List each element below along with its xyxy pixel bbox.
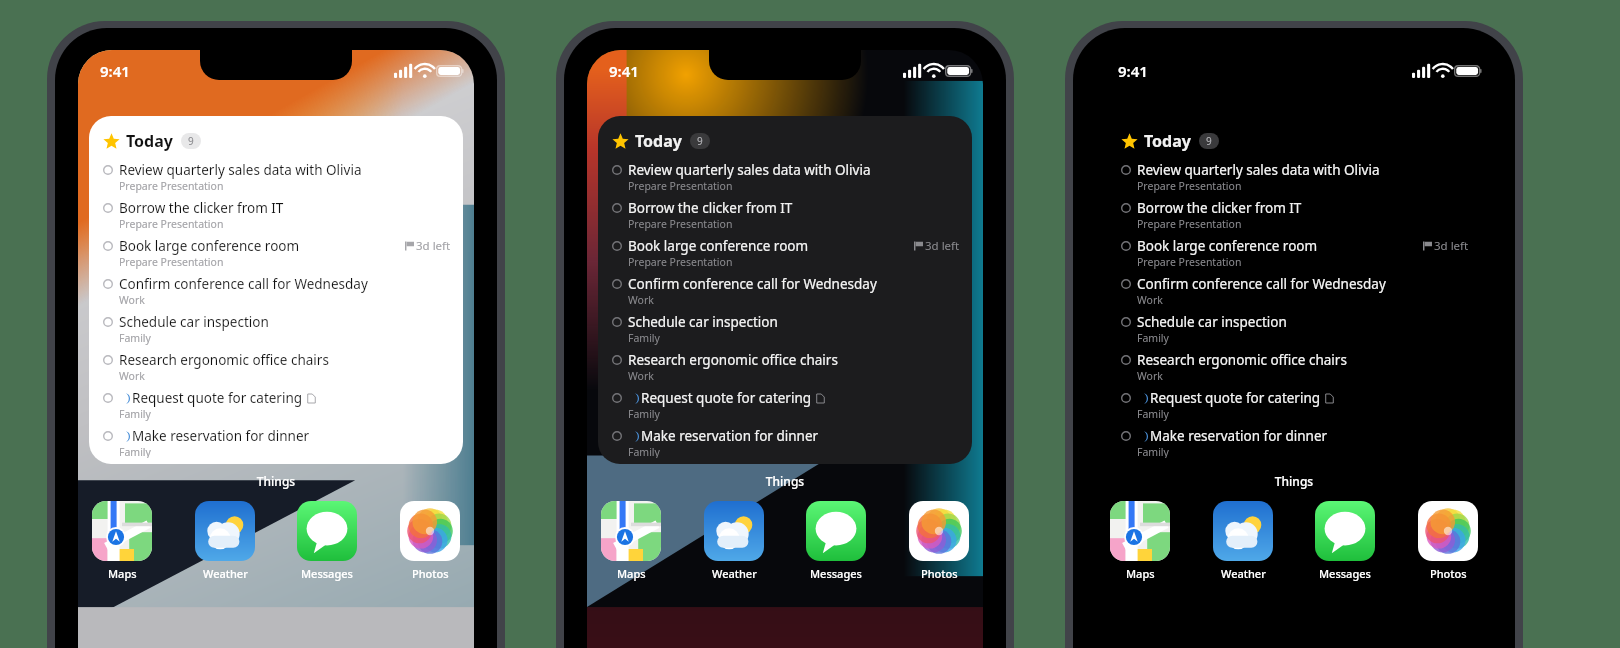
staticText: Weather bbox=[1221, 566, 1266, 581]
button[interactable]: Schedule car inspection bbox=[1121, 313, 1469, 351]
staticText: Confirm conference call for Wednesday bbox=[1137, 275, 1386, 293]
button[interactable]: Request quote for catering bbox=[1121, 389, 1469, 427]
staticText: Borrow the clicker from IT bbox=[119, 199, 284, 217]
staticText: Prepare Presentation bbox=[119, 255, 224, 269]
staticText: Family bbox=[119, 407, 151, 421]
staticText: 3d left bbox=[416, 238, 451, 254]
staticText: Request quote for catering bbox=[1150, 389, 1321, 407]
button[interactable]: Today bbox=[89, 116, 463, 464]
button[interactable]: Messages bbox=[1315, 501, 1375, 581]
button[interactable]: Weather bbox=[1213, 501, 1273, 581]
button[interactable]: Request quote for catering bbox=[103, 389, 451, 427]
button[interactable]: Make reservation for dinner bbox=[612, 427, 960, 464]
staticText: Photos bbox=[921, 566, 958, 581]
staticText: Make reservation for dinner bbox=[1150, 427, 1328, 445]
staticText: Research ergonomic office chairs bbox=[119, 351, 329, 369]
button[interactable]: Photos bbox=[1418, 501, 1478, 581]
button[interactable]: Photos bbox=[909, 501, 969, 581]
staticText: Make reservation for dinner bbox=[132, 427, 310, 445]
staticText: Photos bbox=[1430, 566, 1467, 581]
staticText: Family bbox=[119, 445, 151, 458]
button[interactable]: Schedule car inspection bbox=[612, 313, 960, 351]
staticText: 9:41 bbox=[609, 61, 639, 81]
staticText: 3d left bbox=[1434, 238, 1469, 254]
staticText: Family bbox=[119, 331, 151, 345]
staticText: Request quote for catering bbox=[641, 389, 812, 407]
button[interactable]: Messages bbox=[806, 501, 866, 581]
staticText: Work bbox=[628, 369, 654, 383]
button[interactable]: Review quarterly sales data with Olivia bbox=[612, 161, 960, 199]
button[interactable]: Request quote for catering bbox=[612, 389, 960, 427]
button[interactable]: Weather bbox=[704, 501, 764, 581]
staticText: Things bbox=[587, 473, 983, 489]
staticText: Things bbox=[78, 473, 474, 489]
staticText: Family bbox=[628, 331, 660, 345]
button[interactable]: Make reservation for dinner bbox=[103, 427, 451, 464]
staticText: Work bbox=[628, 293, 654, 307]
staticText: Prepare Presentation bbox=[628, 179, 733, 193]
staticText: Today bbox=[126, 130, 173, 152]
staticText: Family bbox=[1137, 445, 1169, 458]
button[interactable]: Borrow the clicker from IT bbox=[612, 199, 960, 237]
button[interactable]: Research ergonomic office chairs bbox=[612, 351, 960, 389]
staticText: Work bbox=[1137, 369, 1163, 383]
staticText: Work bbox=[119, 369, 145, 383]
button[interactable]: Book large conference room bbox=[103, 237, 451, 275]
button[interactable]: Confirm conference call for Wednesday bbox=[103, 275, 451, 313]
staticText: Research ergonomic office chairs bbox=[628, 351, 838, 369]
button[interactable]: Messages bbox=[297, 501, 357, 581]
staticText: Book large conference room bbox=[119, 237, 300, 255]
staticText: Prepare Presentation bbox=[1137, 255, 1242, 269]
button[interactable]: Today bbox=[1107, 116, 1481, 464]
staticText: Prepare Presentation bbox=[119, 217, 224, 231]
staticText: Prepare Presentation bbox=[628, 255, 733, 269]
staticText: Prepare Presentation bbox=[1137, 179, 1242, 193]
staticText: Schedule car inspection bbox=[628, 313, 778, 331]
button[interactable]: Maps bbox=[1110, 501, 1170, 581]
staticText: Messages bbox=[810, 566, 862, 581]
button[interactable]: Book large conference room bbox=[1121, 237, 1469, 275]
staticText: Request quote for catering bbox=[132, 389, 303, 407]
staticText: Borrow the clicker from IT bbox=[628, 199, 793, 217]
staticText: Weather bbox=[712, 566, 757, 581]
button[interactable]: Photos bbox=[400, 501, 460, 581]
button[interactable]: Review quarterly sales data with Olivia bbox=[103, 161, 451, 199]
staticText: Borrow the clicker from IT bbox=[1137, 199, 1302, 217]
button[interactable]: Research ergonomic office chairs bbox=[103, 351, 451, 389]
staticText: Maps bbox=[617, 566, 646, 581]
staticText: Book large conference room bbox=[1137, 237, 1318, 255]
staticText: 9 bbox=[188, 134, 194, 148]
staticText: Work bbox=[1137, 293, 1163, 307]
button[interactable]: Today bbox=[598, 116, 972, 464]
button[interactable]: Confirm conference call for Wednesday bbox=[612, 275, 960, 313]
button[interactable]: Borrow the clicker from IT bbox=[1121, 199, 1469, 237]
button[interactable]: Review quarterly sales data with Olivia bbox=[1121, 161, 1469, 199]
staticText: Work bbox=[119, 293, 145, 307]
staticText: 9 bbox=[1206, 134, 1212, 148]
staticText: Prepare Presentation bbox=[628, 217, 733, 231]
staticText: Confirm conference call for Wednesday bbox=[119, 275, 368, 293]
button[interactable]: Research ergonomic office chairs bbox=[1121, 351, 1469, 389]
staticText: Review quarterly sales data with Olivia bbox=[1137, 161, 1380, 179]
staticText: Maps bbox=[108, 566, 137, 581]
staticText: Today bbox=[635, 130, 682, 152]
staticText: Make reservation for dinner bbox=[641, 427, 819, 445]
staticText: Today bbox=[1144, 130, 1191, 152]
staticText: Weather bbox=[203, 566, 248, 581]
button[interactable]: Borrow the clicker from IT bbox=[103, 199, 451, 237]
button[interactable]: Maps bbox=[92, 501, 152, 581]
staticText: Things bbox=[1096, 473, 1492, 489]
button[interactable]: Weather bbox=[195, 501, 255, 581]
button[interactable]: Confirm conference call for Wednesday bbox=[1121, 275, 1469, 313]
staticText: Messages bbox=[1319, 566, 1371, 581]
button[interactable]: Maps bbox=[601, 501, 661, 581]
staticText: Prepare Presentation bbox=[119, 179, 224, 193]
button[interactable]: Book large conference room bbox=[612, 237, 960, 275]
staticText: 9 bbox=[697, 134, 703, 148]
button[interactable]: Schedule car inspection bbox=[103, 313, 451, 351]
staticText: Research ergonomic office chairs bbox=[1137, 351, 1347, 369]
button[interactable]: Make reservation for dinner bbox=[1121, 427, 1469, 464]
staticText: Family bbox=[1137, 407, 1169, 421]
staticText: Family bbox=[628, 407, 660, 421]
staticText: Schedule car inspection bbox=[1137, 313, 1287, 331]
